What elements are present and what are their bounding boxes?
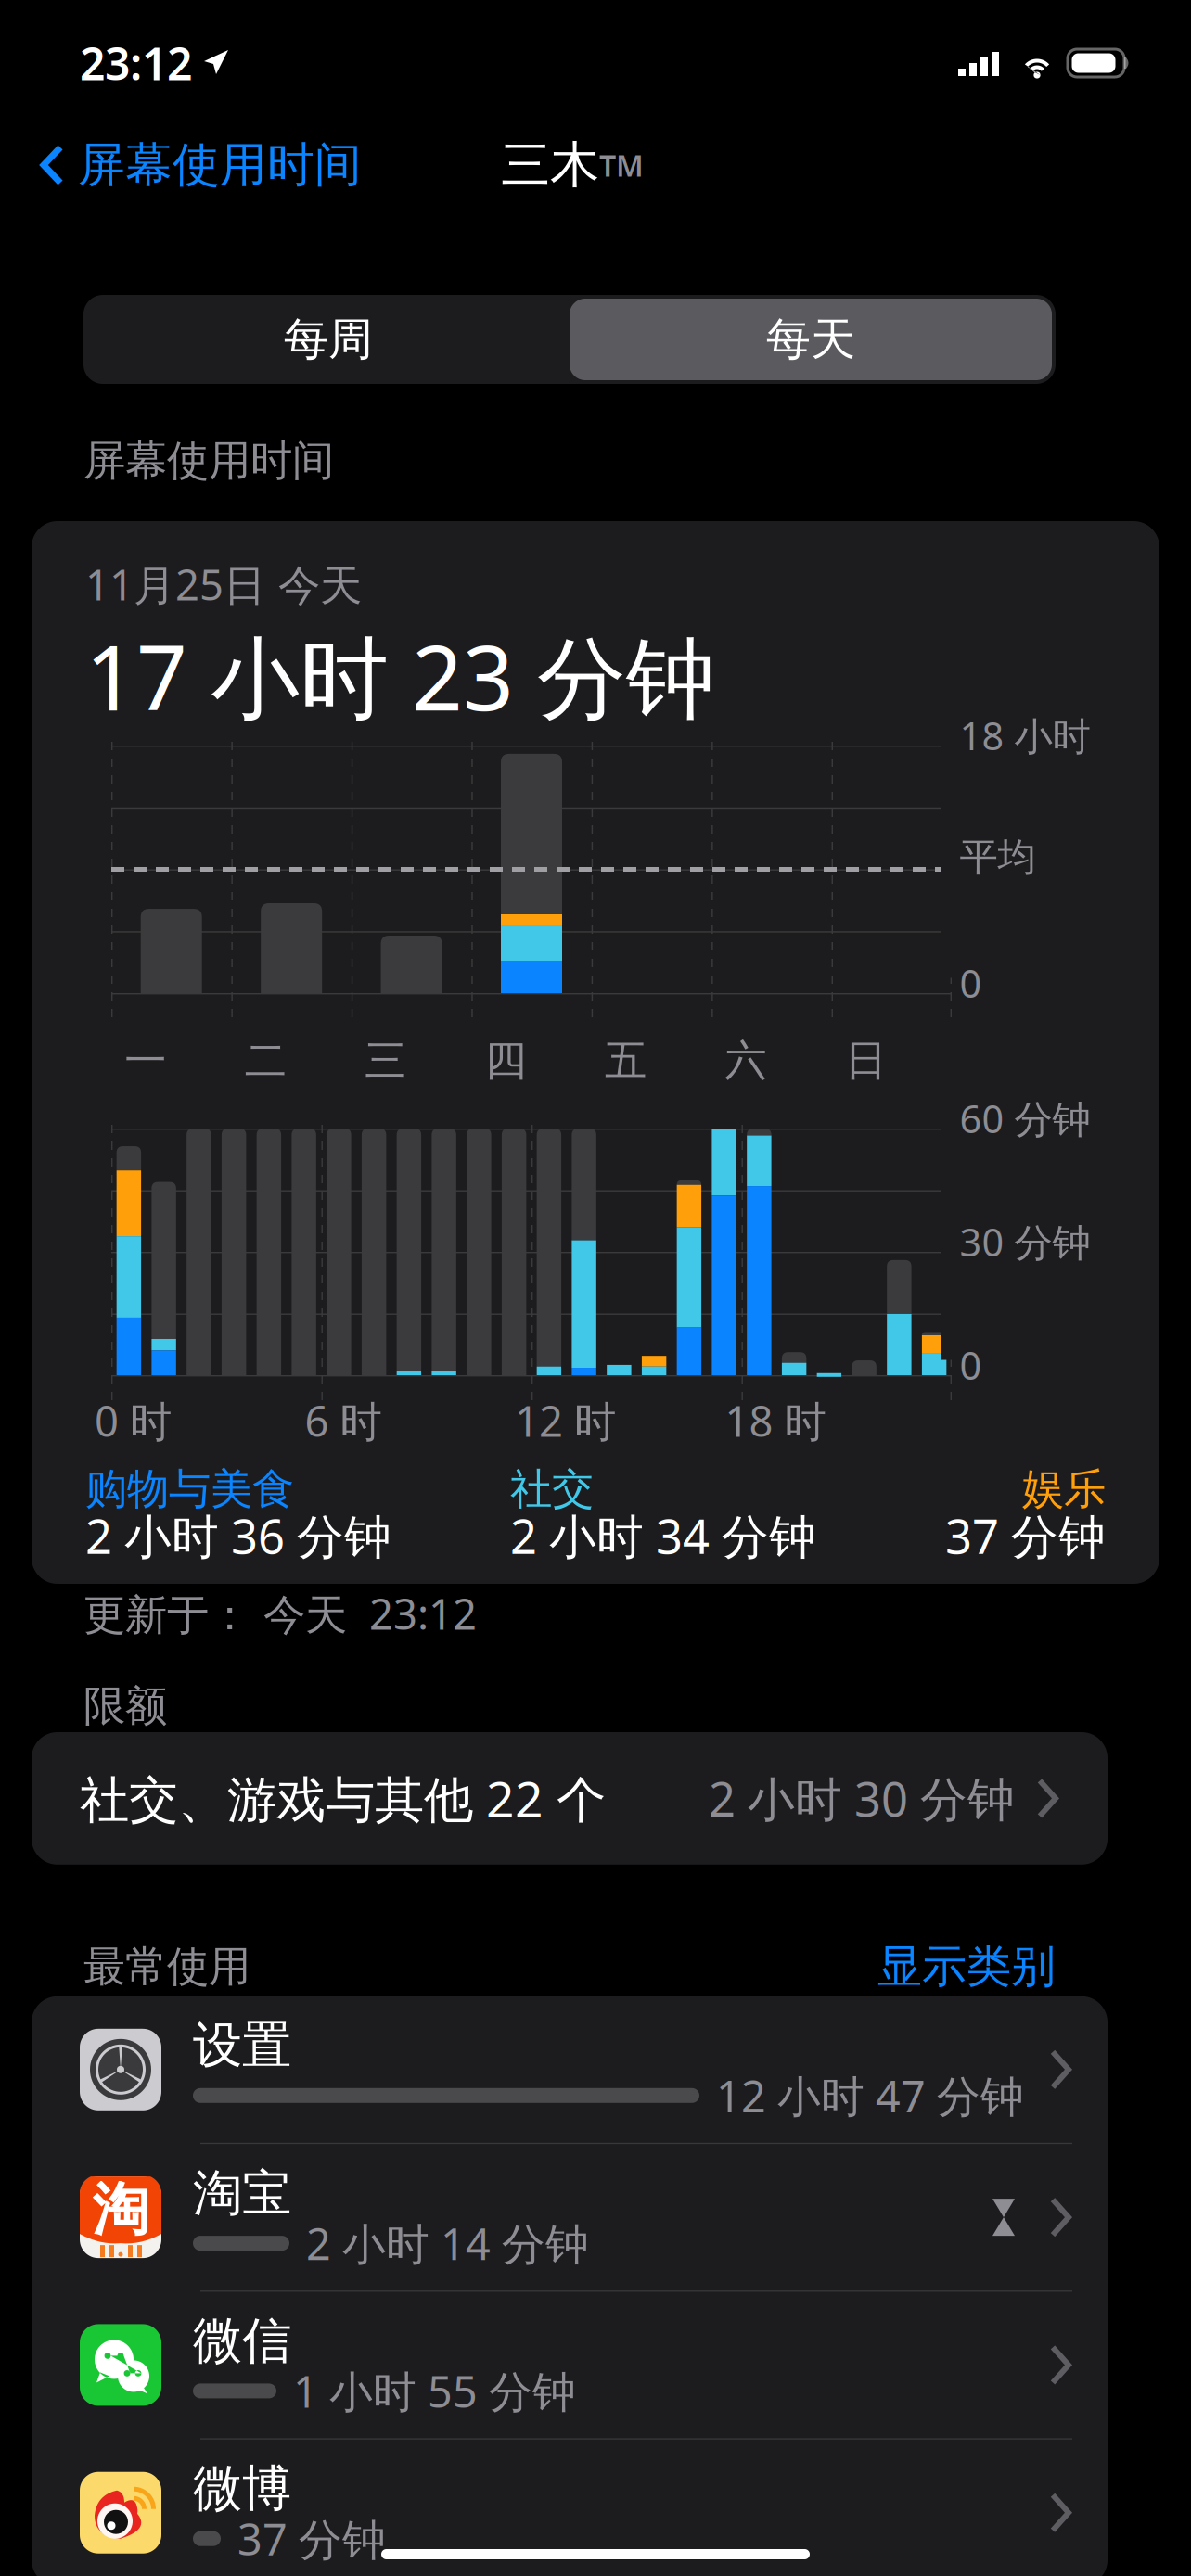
staticText: 四: [485, 1035, 526, 1087]
staticText: 限额: [83, 1680, 167, 1732]
staticText: 娱乐: [1022, 1463, 1106, 1515]
button[interactable]: 社交、游戏与其他 22 个: [0, 1732, 1165, 1865]
staticText: 社交: [510, 1463, 594, 1515]
staticText: 设置: [193, 2015, 291, 2076]
staticText: 37 分钟: [237, 2510, 386, 2567]
staticText: 社交、游戏与其他 22 个: [80, 1766, 606, 1831]
staticText: 23:12: [80, 33, 192, 93]
staticText: 微博: [193, 2458, 291, 2519]
staticText: 每周: [284, 312, 373, 367]
staticText: 2 小时 36 分钟: [85, 1504, 391, 1567]
staticText: 淘: [92, 2175, 149, 2245]
staticText: 一: [124, 1035, 166, 1087]
staticText: 淘宝: [193, 2163, 291, 2224]
staticText: 日: [845, 1035, 887, 1087]
staticText: TM: [599, 145, 644, 185]
staticText: 最常使用: [83, 1941, 250, 1992]
staticText: 17 小时 23 分钟: [85, 617, 715, 735]
staticText: 11月25日 今天: [85, 556, 362, 612]
staticText: 12 小时 47 分钟: [716, 2067, 1024, 2124]
staticText: 0: [960, 1340, 982, 1390]
button[interactable]: 设置: [32, 1996, 1108, 2144]
staticText: 2 小时 34 分钟: [510, 1504, 816, 1567]
staticText: 2 小时 14 分钟: [306, 2214, 589, 2272]
button[interactable]: 微信: [32, 2292, 1108, 2439]
staticText: 五: [605, 1035, 646, 1087]
button[interactable]: 淘: [32, 2144, 1108, 2292]
button[interactable]: 屏幕使用时间: [0, 123, 377, 207]
staticText: 0 时: [95, 1393, 172, 1449]
staticText: 显示类别: [877, 1939, 1056, 1994]
button[interactable]: 显示类别: [877, 1939, 1056, 1994]
staticText: 0: [960, 958, 982, 1008]
staticText: 屏幕使用时间: [83, 435, 334, 487]
staticText: 屏幕使用时间: [78, 136, 362, 194]
staticText: 1 小时 55 分钟: [293, 2362, 576, 2420]
staticText: 18 小时: [960, 710, 1090, 761]
staticText: 30 分钟: [960, 1216, 1090, 1267]
staticText: 购物与美食: [85, 1463, 294, 1515]
staticText: 三: [365, 1035, 406, 1087]
staticText: 三木: [501, 135, 599, 195]
staticText: 60 分钟: [960, 1093, 1090, 1144]
button[interactable]: 每天: [570, 299, 1052, 380]
staticText: 12 时: [515, 1393, 616, 1449]
staticText: 37 分钟: [945, 1504, 1106, 1567]
staticText: 每天: [766, 312, 855, 367]
staticText: 6 时: [305, 1393, 382, 1449]
staticText: 18 时: [725, 1393, 826, 1449]
staticText: 更新于： 今天 23:12: [83, 1586, 477, 1641]
staticText: 微信: [193, 2311, 291, 2371]
button[interactable]: 微博: [32, 2439, 1108, 2576]
button[interactable]: 每周: [87, 299, 570, 380]
staticText: 六: [725, 1035, 767, 1087]
staticText: 二: [245, 1035, 286, 1087]
staticText: 平均: [960, 834, 1036, 881]
staticText: 2 小时 30 分钟: [709, 1767, 1015, 1830]
